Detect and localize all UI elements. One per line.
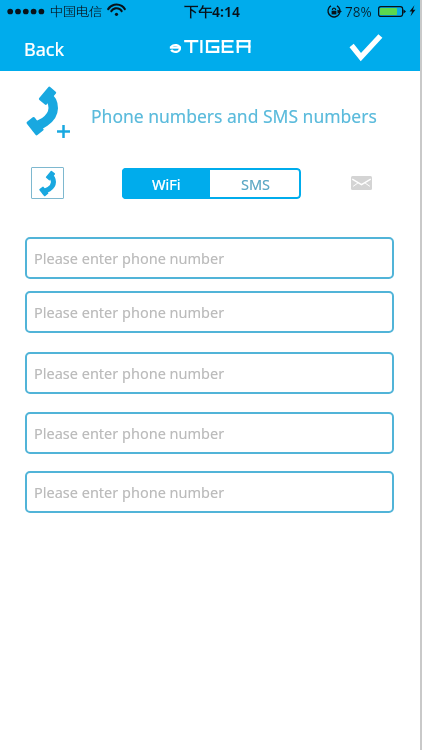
button[interactable]: Back: [14, 31, 75, 68]
button[interactable]: Please enter phone number: [25, 291, 394, 333]
staticText: Please enter phone number: [34, 248, 225, 268]
staticText: Please enter phone number: [34, 482, 225, 502]
staticText: Please enter phone number: [34, 423, 225, 443]
staticText: Phone numbers and SMS numbers: [91, 104, 377, 128]
staticText: 下午4:14: [184, 2, 240, 21]
staticText: 中国电信: [50, 3, 102, 19]
staticText: WiFi: [152, 174, 181, 194]
button[interactable]: WiFi: [122, 168, 210, 199]
staticText: Back: [24, 37, 65, 62]
button[interactable]: Call: [31, 167, 64, 199]
button[interactable]: SMS: [210, 168, 301, 199]
staticText: Please enter phone number: [34, 302, 225, 322]
staticText: Please enter phone number: [34, 363, 225, 383]
button[interactable]: Please enter phone number: [25, 471, 394, 513]
button[interactable]: Please enter phone number: [25, 352, 394, 394]
button[interactable]: Confirm: [341, 26, 391, 68]
button[interactable]: Message: [344, 169, 379, 197]
staticText: SMS: [241, 174, 271, 194]
button[interactable]: Please enter phone number: [25, 412, 394, 454]
button[interactable]: Please enter phone number: [25, 237, 394, 279]
staticText: 78%: [345, 3, 372, 21]
